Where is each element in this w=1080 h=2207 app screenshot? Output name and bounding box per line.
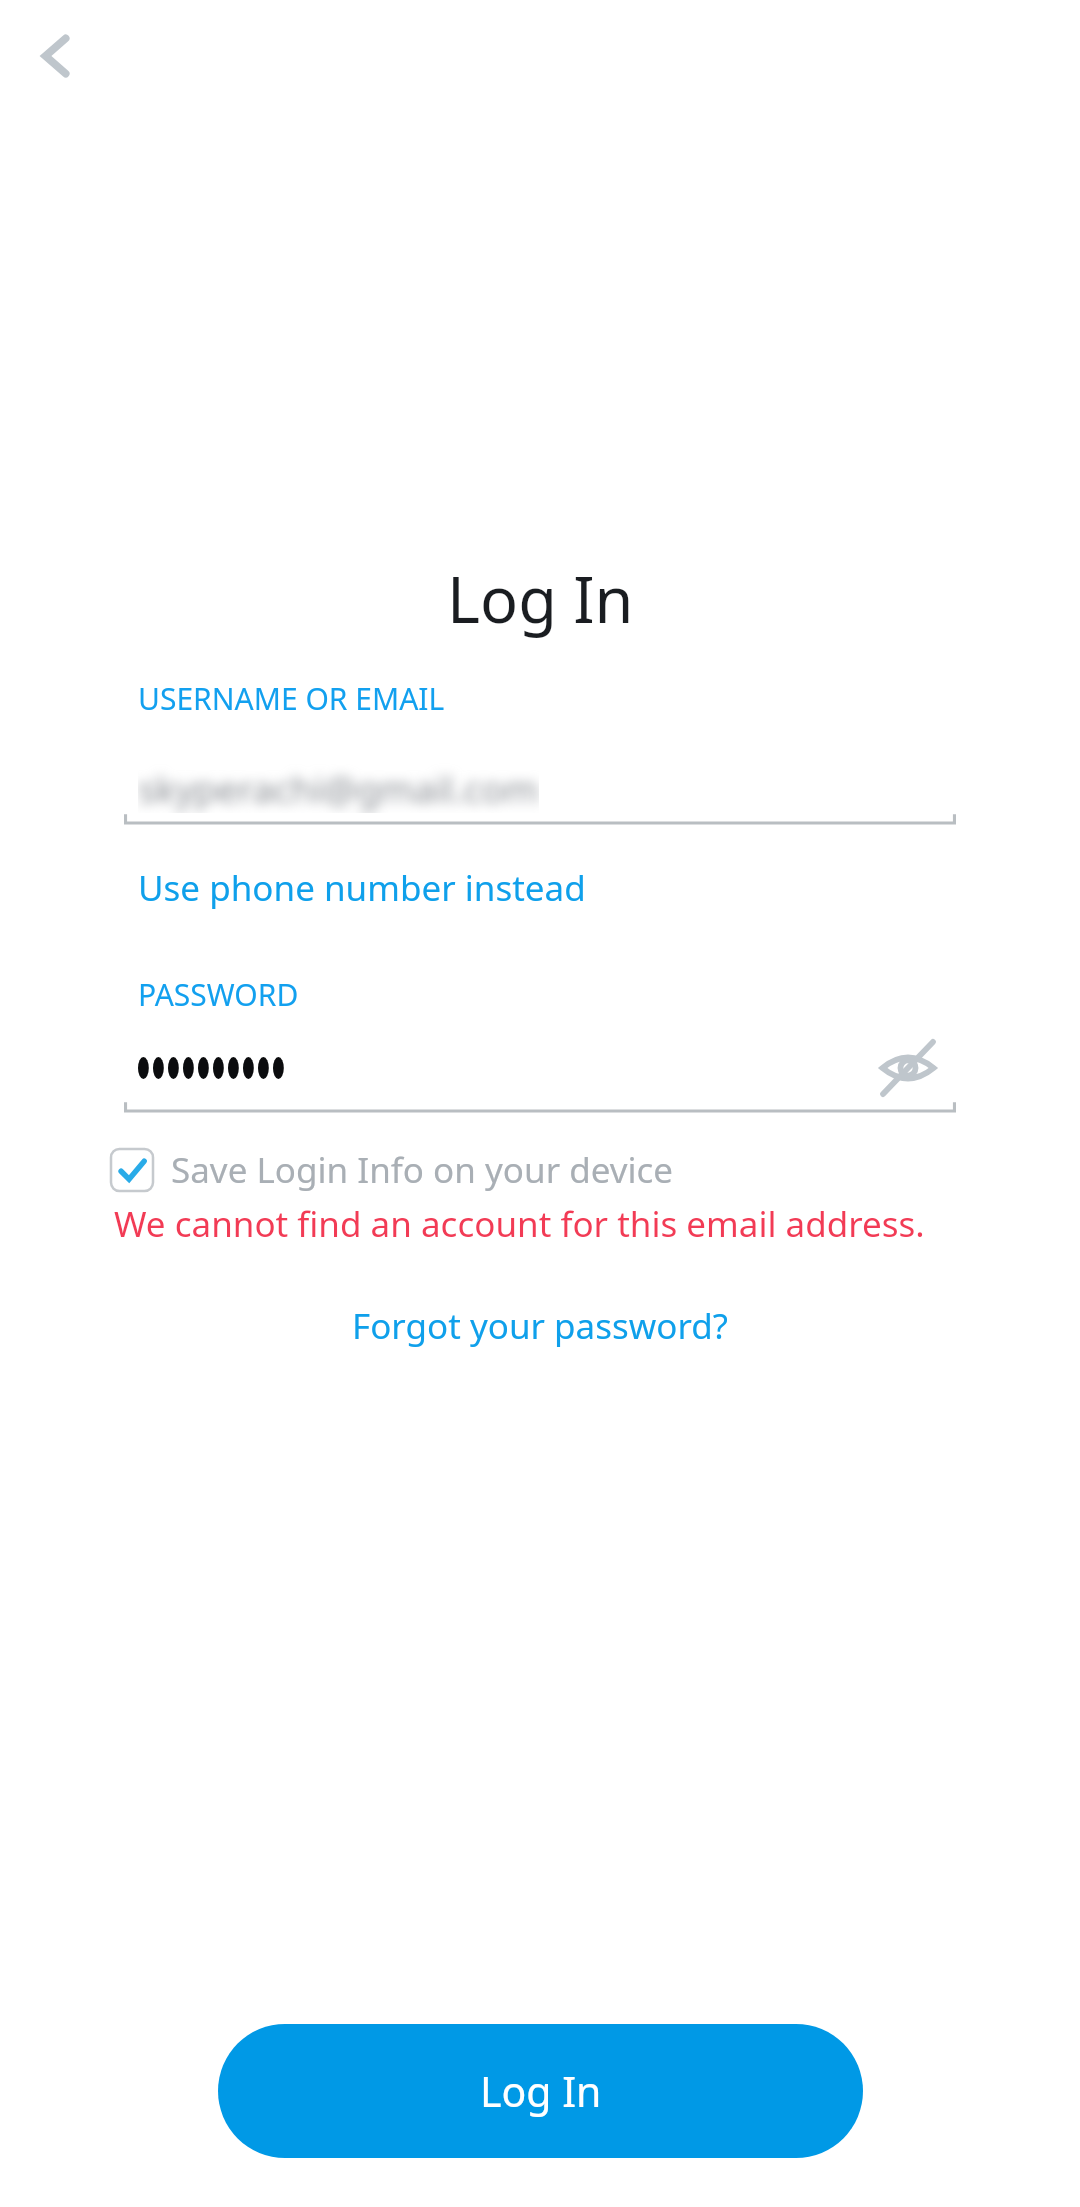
staticText: Save Login Info on your device: [171, 1146, 674, 1194]
staticText: Forgot your password?: [352, 1302, 728, 1350]
button[interactable]: Save Login Info on your device: [105, 1140, 680, 1200]
button[interactable]: Use phone number instead: [130, 858, 594, 918]
staticText: Log In: [480, 2063, 602, 2119]
button[interactable]: skyperachi@gmail.com: [124, 748, 956, 828]
button[interactable]: Show password: [870, 1032, 946, 1104]
staticText: skyperachi@gmail.com: [138, 763, 539, 813]
staticText: Log In: [447, 556, 634, 642]
button[interactable]: Back: [14, 14, 98, 98]
staticText: We cannot find an account for this email…: [114, 1200, 925, 1248]
staticText: PASSWORD: [138, 974, 299, 1015]
button[interactable]: Forgot your password?: [340, 1296, 740, 1356]
staticText: USERNAME OR EMAIL: [138, 678, 445, 719]
button[interactable]: Log In: [218, 2024, 863, 2158]
staticText: Use phone number instead: [138, 864, 586, 912]
